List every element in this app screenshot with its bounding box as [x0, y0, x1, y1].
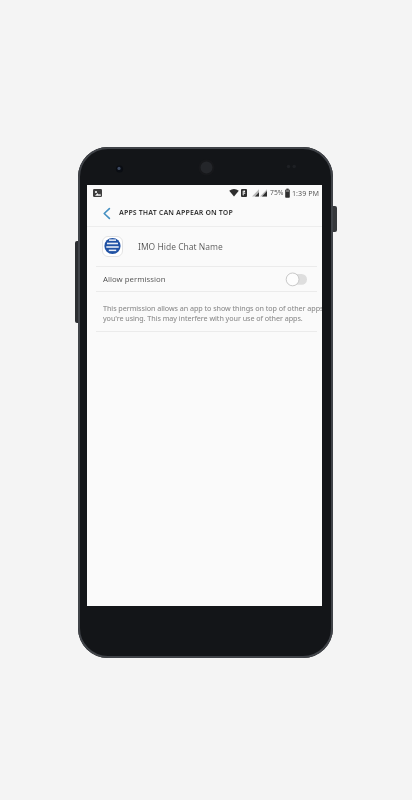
button[interactable]: Allow permission [87, 267, 322, 291]
staticText: IMO Hide Chat Name [138, 241, 223, 253]
staticText: Allow permission [103, 274, 166, 285]
button[interactable]: IMO Hide Chat Name [87, 227, 322, 266]
staticText: 1:39 PM [292, 188, 319, 198]
staticText: you're using. This may interfere with yo… [103, 313, 303, 323]
button[interactable] [87, 200, 117, 226]
staticText: This permission allows an app to show th… [103, 303, 322, 313]
staticText: 75% [270, 188, 284, 197]
staticText: APPS THAT CAN APPEAR ON TOP [119, 208, 233, 218]
button[interactable] [286, 272, 308, 287]
